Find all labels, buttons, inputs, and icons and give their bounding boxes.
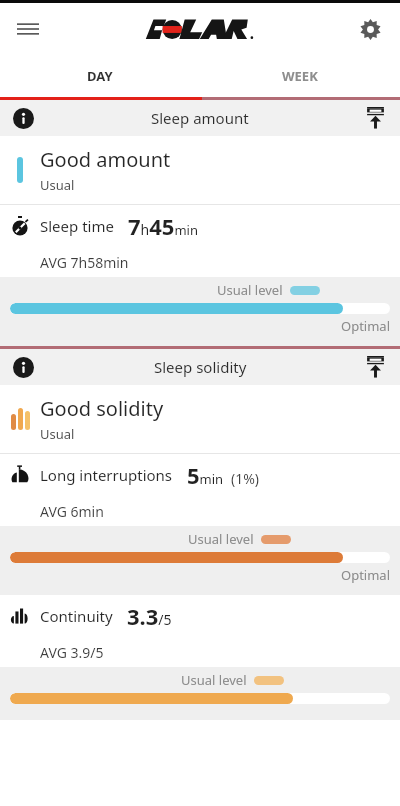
button[interactable]: Sleep time	[0, 205, 400, 277]
button[interactable]: Info	[10, 354, 36, 380]
button[interactable]: Collapse	[360, 352, 390, 382]
staticText: WEEK	[282, 67, 318, 85]
button[interactable]: Good amount	[0, 136, 400, 204]
staticText: 5min	[187, 460, 224, 490]
staticText: Usual	[40, 425, 75, 443]
staticText: Continuity	[40, 606, 113, 626]
staticText: DAY	[87, 67, 113, 85]
button[interactable]: Continuity	[0, 595, 400, 667]
button[interactable]: Collapse	[360, 103, 390, 133]
staticText: Sleep time	[40, 216, 114, 236]
button[interactable]: Info	[0, 100, 400, 136]
staticText: Optimal	[341, 566, 390, 584]
staticText: 7h45min	[128, 211, 198, 241]
button[interactable]: Good solidity	[0, 385, 400, 453]
button[interactable]: Info	[10, 105, 36, 131]
staticText: Good solidity	[40, 395, 164, 422]
button[interactable]: WEEK	[200, 55, 400, 97]
staticText: Usual level	[217, 281, 283, 299]
staticText: AVG 7h58min	[40, 253, 129, 272]
button[interactable]: Menu	[8, 9, 48, 49]
staticText: Usual level	[181, 671, 247, 689]
staticText: (1%)	[231, 469, 260, 488]
button[interactable]: DAY	[0, 55, 200, 97]
staticText: Usual level	[188, 530, 254, 548]
staticText: Long interruptions	[40, 465, 173, 485]
staticText: Usual	[40, 176, 75, 194]
staticText: Sleep solidity	[154, 357, 247, 377]
button[interactable]: Long interruptions	[0, 454, 400, 526]
staticText: 3.3/5	[127, 601, 172, 631]
staticText: AVG 3.9/5	[40, 643, 104, 662]
button[interactable]: Info	[0, 349, 400, 385]
staticText: Good amount	[40, 146, 171, 173]
staticText: AVG 6min	[40, 502, 104, 521]
button[interactable]: Settings	[350, 9, 390, 49]
staticText: Optimal	[341, 317, 390, 335]
staticText: Sleep amount	[151, 108, 249, 128]
